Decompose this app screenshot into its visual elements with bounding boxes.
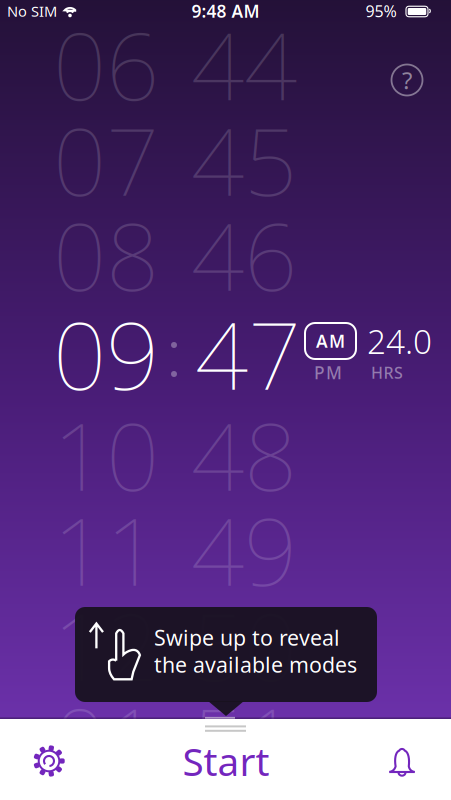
staticText: Start — [182, 735, 269, 787]
staticText: HRS — [371, 362, 403, 383]
staticText: No SIM — [7, 1, 57, 21]
staticText: 07 — [53, 97, 159, 221]
staticText: 44 — [191, 2, 297, 126]
staticText: 12 — [53, 583, 159, 707]
button[interactable]: Alarm sound — [380, 740, 424, 784]
staticText: 95% — [365, 0, 396, 22]
staticText: 47 — [195, 291, 301, 415]
staticText: 24.0 — [367, 319, 432, 363]
button[interactable]: Start — [182, 735, 269, 787]
staticText: PM — [314, 361, 342, 384]
staticText: 46 — [191, 192, 297, 316]
staticText: Swipe up to reveal — [154, 623, 340, 652]
staticText: 06 — [53, 2, 159, 126]
staticText: 08 — [53, 192, 159, 316]
staticText: 9:48 AM — [191, 0, 259, 22]
staticText: AM — [316, 329, 345, 352]
staticText: 09 — [53, 291, 159, 415]
staticText: 45 — [191, 97, 297, 221]
staticText: 11 — [53, 487, 159, 611]
staticText: 50 — [191, 583, 297, 707]
staticText: ? — [402, 64, 412, 96]
button[interactable]: 24.0 — [367, 319, 432, 363]
button[interactable]: AM — [305, 323, 356, 359]
staticText: 10 — [53, 392, 159, 516]
staticText: 48 — [191, 392, 297, 516]
button[interactable]: PM — [314, 361, 342, 384]
staticText: 51 — [191, 678, 297, 800]
button[interactable]: Settings — [27, 739, 71, 783]
staticText: 01 — [53, 678, 159, 800]
staticText: the available modes — [154, 650, 357, 679]
button[interactable]: Help — [389, 62, 425, 98]
staticText: 49 — [191, 487, 297, 611]
